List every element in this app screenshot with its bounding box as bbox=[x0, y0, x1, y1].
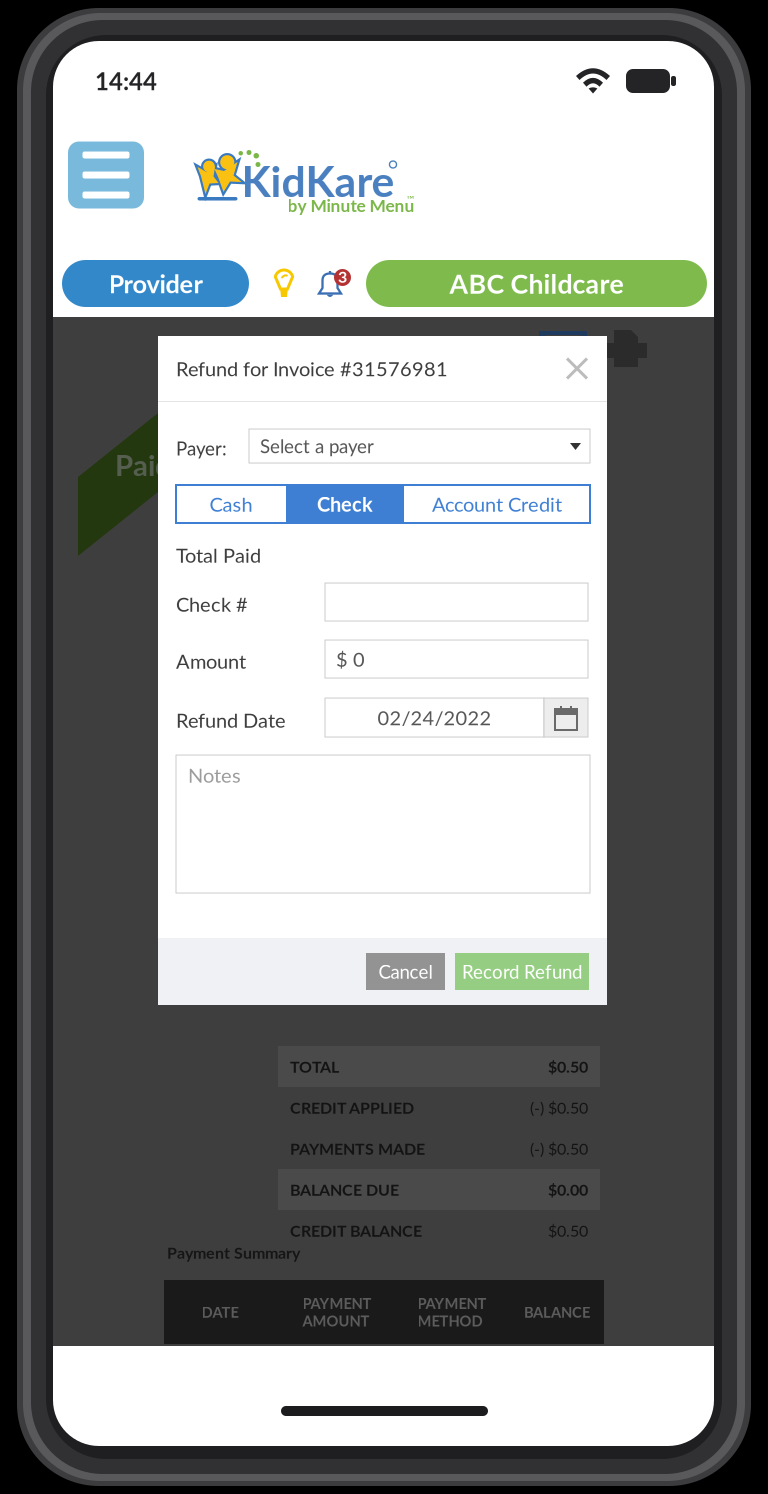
staticText: Refund Date bbox=[176, 708, 286, 732]
button[interactable]: Cash bbox=[176, 485, 286, 523]
staticText: Notes bbox=[188, 763, 241, 787]
button[interactable]: Choose date bbox=[544, 698, 588, 737]
staticText: 14:44 bbox=[95, 67, 157, 95]
staticText: Refund for Invoice #31576981 bbox=[176, 356, 448, 380]
staticText: Account Credit bbox=[432, 492, 562, 516]
button[interactable]: Email invoice bbox=[541, 333, 585, 367]
staticText: CREDIT APPLIED bbox=[290, 1098, 414, 1117]
staticText: ™ bbox=[406, 193, 414, 206]
button[interactable]: Cancel bbox=[366, 953, 445, 990]
staticText: KidKare bbox=[241, 155, 394, 206]
button[interactable]: ABC Childcare bbox=[366, 260, 707, 307]
staticText: CREDIT BALANCE bbox=[290, 1221, 422, 1240]
button[interactable]: Menu bbox=[68, 141, 144, 208]
staticText: BALANCE DUE bbox=[290, 1180, 399, 1199]
staticText: Paid bbox=[115, 447, 172, 482]
staticText: PAYMENT METHOD bbox=[417, 1294, 486, 1330]
button[interactable]: Tips bbox=[273, 268, 295, 299]
button[interactable]: Notifications bbox=[317, 269, 355, 303]
staticText: PAYMENTS MADE bbox=[290, 1139, 425, 1158]
staticText: Provider bbox=[108, 268, 202, 299]
staticText: Select a payer bbox=[260, 435, 374, 457]
staticText: Check bbox=[317, 492, 373, 516]
staticText: Payer: bbox=[176, 437, 227, 459]
button[interactable]: Provider bbox=[62, 260, 249, 307]
staticText: Cash bbox=[209, 492, 252, 516]
staticText: Amount bbox=[176, 649, 246, 673]
staticText: (-) $0.50 bbox=[530, 1098, 588, 1117]
staticText: $ 0 bbox=[336, 647, 365, 671]
staticText: TOTAL bbox=[290, 1057, 339, 1076]
staticText: Total Paid bbox=[176, 543, 261, 567]
staticText: (-) $0.50 bbox=[530, 1139, 588, 1158]
staticText: $0.50 bbox=[548, 1057, 588, 1076]
staticText: Payment Summary bbox=[167, 1243, 300, 1262]
staticText: DATE bbox=[201, 1303, 238, 1321]
button[interactable]: Print invoice bbox=[605, 330, 647, 368]
button[interactable]: Check bbox=[286, 485, 404, 523]
staticText: by Minute Menu bbox=[287, 195, 414, 216]
staticText: Check # bbox=[176, 592, 248, 616]
staticText: BALANCE bbox=[524, 1303, 590, 1321]
staticText: Record Refund bbox=[462, 960, 582, 983]
staticText: ABC Childcare bbox=[449, 267, 623, 299]
staticText: Cancel bbox=[378, 960, 432, 983]
staticText: PAYMENT AMOUNT bbox=[302, 1294, 371, 1330]
button[interactable]: Account Credit bbox=[404, 485, 590, 523]
staticText: $0.50 bbox=[548, 1221, 588, 1240]
staticText: 02/24/2022 bbox=[377, 705, 491, 729]
staticText: $0.00 bbox=[548, 1180, 588, 1199]
staticText: 3 bbox=[338, 267, 347, 286]
button[interactable]: Close bbox=[564, 355, 590, 381]
button[interactable]: Record Refund bbox=[455, 953, 589, 990]
